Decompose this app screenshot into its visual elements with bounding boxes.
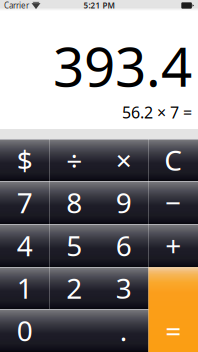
button[interactable]: =	[148, 267, 198, 352]
staticText: 1	[17, 269, 33, 307]
staticText: ÷	[66, 141, 82, 179]
staticText: −	[165, 184, 181, 221]
staticText: 56.2 × 7 =	[122, 102, 192, 123]
button[interactable]: ÷	[49, 139, 99, 181]
button[interactable]: 0	[0, 309, 99, 352]
staticText: 393.4	[53, 29, 192, 102]
staticText: 8	[66, 184, 82, 221]
button[interactable]: +	[148, 224, 198, 267]
staticText: 0	[17, 312, 33, 349]
staticText: 2	[66, 269, 82, 307]
button[interactable]: 3	[99, 267, 148, 309]
staticText: 6	[116, 227, 132, 264]
button[interactable]: 8	[49, 181, 99, 224]
button[interactable]: C	[148, 139, 198, 181]
staticText: +	[165, 227, 181, 264]
button[interactable]: 6	[99, 224, 148, 267]
staticText: 4	[17, 227, 33, 264]
staticText: 3	[116, 269, 132, 307]
button[interactable]: 4	[0, 224, 49, 267]
button[interactable]: 5	[49, 224, 99, 267]
button[interactable]: 7	[0, 181, 49, 224]
button[interactable]: 2	[49, 267, 99, 309]
button[interactable]: $	[0, 139, 49, 181]
staticText: 7	[17, 184, 33, 221]
staticText: $	[17, 141, 33, 179]
button[interactable]: .	[99, 309, 148, 352]
button[interactable]: −	[148, 181, 198, 224]
staticText: 5	[66, 227, 82, 264]
button[interactable]: 9	[99, 181, 148, 224]
staticText: 5:21 PM	[83, 0, 114, 11]
staticText: .	[120, 312, 128, 349]
button[interactable]: 1	[0, 267, 49, 309]
button[interactable]: ×	[99, 139, 148, 181]
staticText: ×	[116, 141, 132, 179]
staticText: C	[164, 141, 182, 179]
staticText: =	[165, 312, 181, 349]
staticText: 9	[116, 184, 132, 221]
staticText: Carrier	[4, 0, 29, 11]
